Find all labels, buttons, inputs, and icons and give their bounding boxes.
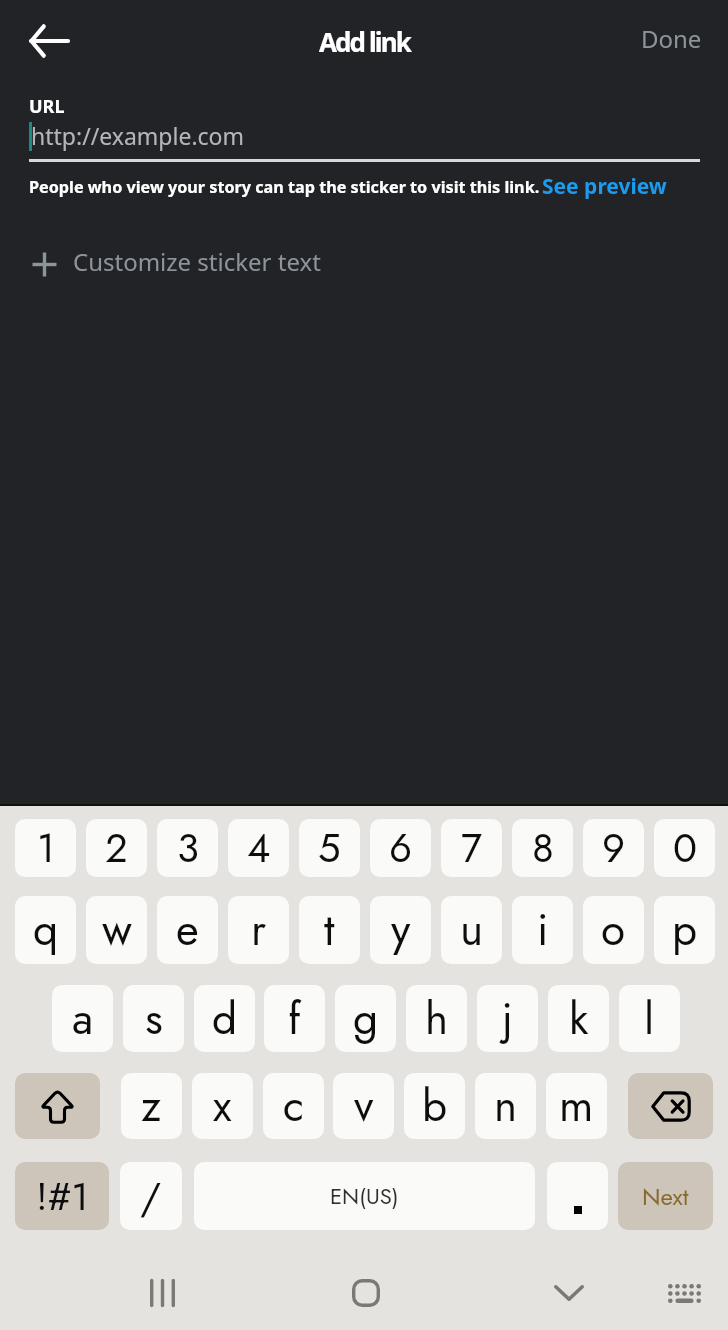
button[interactable]: l bbox=[619, 985, 680, 1052]
staticText: c bbox=[283, 1074, 305, 1138]
staticText: !#1 bbox=[36, 1168, 89, 1224]
button[interactable]: 6 bbox=[370, 819, 431, 877]
staticText: g bbox=[353, 987, 379, 1051]
button[interactable]: !#1 bbox=[15, 1162, 109, 1230]
button[interactable]: e bbox=[157, 896, 218, 964]
staticText: Add link bbox=[319, 24, 410, 59]
staticText: r bbox=[251, 898, 267, 962]
button[interactable]: 9 bbox=[583, 819, 644, 877]
button[interactable]: a bbox=[52, 985, 113, 1052]
staticText: i bbox=[537, 898, 549, 962]
button[interactable]: See preview bbox=[542, 172, 667, 201]
button[interactable]: Backspace bbox=[628, 1073, 713, 1139]
button[interactable]: k bbox=[548, 985, 609, 1052]
staticText: o bbox=[601, 898, 626, 962]
button[interactable]: b bbox=[404, 1073, 465, 1139]
button[interactable]: o bbox=[583, 896, 644, 964]
staticText: EN(US) bbox=[330, 1180, 399, 1212]
button[interactable]: v bbox=[333, 1073, 394, 1139]
staticText: x bbox=[213, 1074, 232, 1138]
button[interactable]: h bbox=[406, 985, 467, 1052]
button[interactable]: j bbox=[477, 985, 538, 1052]
button[interactable]: / bbox=[120, 1162, 182, 1230]
staticText: 4 bbox=[247, 819, 271, 877]
button[interactable]: r bbox=[228, 896, 289, 964]
button[interactable]: 0 bbox=[654, 819, 715, 877]
button[interactable]: g bbox=[335, 985, 396, 1052]
staticText: Customize sticker text bbox=[73, 245, 321, 278]
button[interactable]: Next bbox=[618, 1162, 713, 1230]
button[interactable]: d bbox=[194, 985, 255, 1052]
staticText: 3 bbox=[177, 819, 199, 877]
staticText: 2 bbox=[105, 819, 128, 877]
staticText: w bbox=[102, 898, 132, 962]
button[interactable]: w bbox=[86, 896, 147, 964]
staticText: 8 bbox=[532, 819, 554, 877]
button[interactable]: Done bbox=[626, 9, 716, 67]
button[interactable]: EN(US) bbox=[194, 1162, 535, 1230]
button[interactable]: Recents bbox=[131, 1262, 193, 1324]
button[interactable]: Period bbox=[547, 1162, 608, 1230]
button[interactable]: p bbox=[654, 896, 715, 964]
staticText: f bbox=[288, 987, 301, 1051]
staticText: n bbox=[494, 1074, 518, 1138]
staticText: j bbox=[502, 987, 513, 1051]
staticText: v bbox=[354, 1074, 374, 1138]
staticText: 9 bbox=[602, 819, 626, 877]
button[interactable]: y bbox=[370, 896, 431, 964]
staticText: http://example.com bbox=[31, 120, 245, 151]
staticText: URL bbox=[29, 94, 65, 119]
staticText: u bbox=[460, 898, 484, 962]
button[interactable]: 4 bbox=[228, 819, 289, 877]
button[interactable]: q bbox=[15, 896, 76, 964]
staticText: Next bbox=[642, 1179, 689, 1214]
staticText: l bbox=[644, 987, 655, 1051]
button[interactable]: 2 bbox=[86, 819, 147, 877]
staticText: 0 bbox=[673, 819, 697, 877]
button[interactable]: Home bbox=[335, 1262, 397, 1324]
button[interactable]: m bbox=[546, 1073, 607, 1139]
button[interactable]: 3 bbox=[157, 819, 218, 877]
button[interactable]: n bbox=[475, 1073, 536, 1139]
button[interactable]: Change keyboard bbox=[653, 1262, 715, 1324]
staticText: 5 bbox=[318, 819, 341, 877]
staticText: m bbox=[559, 1074, 594, 1138]
button[interactable]: 7 bbox=[441, 819, 502, 877]
button[interactable]: Customize sticker text bbox=[22, 238, 342, 286]
staticText: s bbox=[145, 987, 163, 1051]
staticText: t bbox=[324, 898, 335, 962]
button[interactable]: Hide keyboard bbox=[538, 1262, 600, 1324]
button[interactable]: 8 bbox=[512, 819, 573, 877]
staticText: y bbox=[391, 898, 411, 962]
button[interactable]: u bbox=[441, 896, 502, 964]
staticText: / bbox=[140, 1167, 162, 1226]
staticText: 1 bbox=[37, 819, 55, 877]
button[interactable]: s bbox=[123, 985, 184, 1052]
staticText: Done bbox=[641, 22, 702, 55]
button[interactable]: 5 bbox=[299, 819, 360, 877]
button[interactable]: t bbox=[299, 896, 360, 964]
staticText: a bbox=[72, 987, 94, 1051]
button[interactable]: x bbox=[192, 1073, 253, 1139]
staticText: See preview bbox=[542, 172, 667, 201]
button[interactable]: z bbox=[121, 1073, 182, 1139]
staticText: d bbox=[212, 987, 238, 1051]
staticText: People who view your story can tap the s… bbox=[29, 176, 540, 198]
staticText: e bbox=[176, 898, 199, 962]
button[interactable]: i bbox=[512, 896, 573, 964]
button[interactable]: Shift bbox=[15, 1073, 100, 1139]
staticText: 6 bbox=[389, 819, 413, 877]
staticText: k bbox=[569, 987, 589, 1051]
staticText: z bbox=[141, 1074, 162, 1138]
staticText: h bbox=[425, 987, 449, 1051]
staticText: b bbox=[422, 1074, 448, 1138]
button[interactable]: c bbox=[263, 1073, 324, 1139]
staticText: q bbox=[33, 898, 59, 962]
button[interactable]: 1 bbox=[15, 819, 76, 877]
button[interactable]: Back bbox=[13, 12, 85, 70]
button[interactable]: f bbox=[264, 985, 325, 1052]
staticText: 7 bbox=[461, 819, 482, 877]
staticText: p bbox=[672, 898, 698, 962]
